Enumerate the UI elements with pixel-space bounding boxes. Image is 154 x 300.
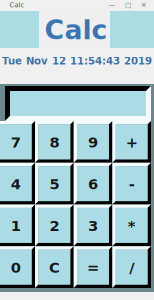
button[interactable]: 7 (0, 0, 154, 300)
button[interactable]: - (0, 0, 154, 300)
staticText: 8 (49, 134, 59, 151)
staticText: - (129, 176, 135, 193)
staticText: = (87, 259, 99, 276)
staticText: ✕ (141, 1, 147, 9)
staticText: C (49, 259, 60, 276)
staticText: — (108, 1, 115, 9)
button[interactable]: 3 (0, 0, 154, 300)
staticText: 9 (88, 134, 98, 151)
staticText: □ (125, 1, 131, 9)
button[interactable]: * (0, 0, 154, 300)
staticText: 0 (11, 259, 21, 276)
button[interactable]: = (0, 0, 154, 300)
staticText: 4 (11, 176, 21, 193)
staticText: 2 (49, 217, 59, 234)
button[interactable]: / (0, 0, 154, 300)
button[interactable]: 6 (0, 0, 154, 300)
button[interactable]: C (0, 0, 154, 300)
button[interactable]: + (0, 0, 154, 300)
staticText: 1 (11, 217, 21, 234)
button[interactable]: 0 (0, 0, 154, 300)
staticText: Tue Nov 12 11:54:43 2019 (2, 55, 152, 67)
staticText: / (129, 259, 134, 276)
button[interactable]: 9 (0, 0, 154, 300)
button[interactable]: 5 (0, 0, 154, 300)
button[interactable]: 2 (0, 0, 154, 300)
staticText: Calc (44, 14, 107, 45)
button[interactable]: 4 (0, 0, 154, 300)
staticText: 7 (11, 134, 21, 151)
staticText: Calc (9, 1, 24, 9)
staticText: 6 (88, 176, 98, 193)
staticText: + (126, 134, 138, 151)
button[interactable]: 1 (0, 0, 154, 300)
staticText: 3 (88, 217, 98, 234)
staticText: * (128, 217, 136, 234)
button[interactable]: 8 (0, 0, 154, 300)
staticText: 5 (49, 176, 59, 193)
